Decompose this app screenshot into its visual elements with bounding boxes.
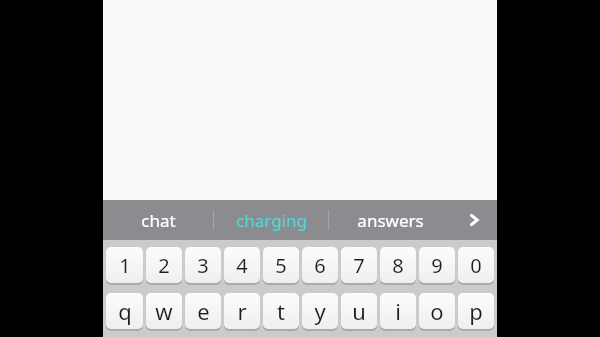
staticText: 5 bbox=[275, 252, 287, 279]
staticText: o bbox=[430, 296, 444, 326]
staticText: answers bbox=[357, 209, 424, 232]
staticText: 1 bbox=[119, 252, 131, 279]
button[interactable]: 2 bbox=[146, 247, 182, 283]
button[interactable]: 5 bbox=[263, 247, 299, 283]
staticText: e bbox=[197, 296, 210, 326]
staticText: w bbox=[155, 296, 173, 326]
button[interactable]: 4 bbox=[224, 247, 260, 283]
staticText: u bbox=[352, 296, 366, 326]
staticText: 8 bbox=[392, 252, 404, 279]
button[interactable]: r bbox=[224, 293, 260, 329]
staticText: charging bbox=[236, 209, 307, 232]
staticText: q bbox=[118, 296, 132, 326]
staticText: 3 bbox=[197, 252, 209, 279]
staticText: chat bbox=[141, 209, 176, 232]
button[interactable]: More suggestions bbox=[451, 200, 497, 240]
button[interactable]: answers bbox=[329, 200, 451, 240]
button[interactable]: 8 bbox=[380, 247, 416, 283]
button[interactable]: i bbox=[380, 293, 416, 329]
button[interactable]: t bbox=[263, 293, 299, 329]
button[interactable]: chat bbox=[103, 200, 213, 240]
staticText: 6 bbox=[314, 252, 326, 279]
staticText: y bbox=[314, 296, 326, 326]
button[interactable]: w bbox=[146, 293, 182, 329]
staticText: r bbox=[237, 296, 247, 326]
staticText: i bbox=[395, 296, 401, 326]
button[interactable]: q bbox=[106, 293, 143, 329]
button[interactable]: 3 bbox=[185, 247, 221, 283]
button[interactable]: e bbox=[185, 293, 221, 329]
staticText: p bbox=[469, 296, 483, 326]
staticText: 4 bbox=[236, 252, 248, 279]
button[interactable]: 1 bbox=[106, 247, 143, 283]
staticText: 7 bbox=[353, 252, 365, 279]
button[interactable]: u bbox=[341, 293, 377, 329]
button[interactable]: o bbox=[419, 293, 455, 329]
button[interactable]: y bbox=[302, 293, 338, 329]
staticText: 0 bbox=[470, 252, 482, 279]
button[interactable]: 0 bbox=[458, 247, 494, 283]
staticText: t bbox=[277, 296, 285, 326]
button[interactable]: charging bbox=[214, 200, 328, 240]
button[interactable]: 9 bbox=[419, 247, 455, 283]
button[interactable]: p bbox=[458, 293, 494, 329]
button[interactable]: 7 bbox=[341, 247, 377, 283]
button[interactable]: 6 bbox=[302, 247, 338, 283]
staticText: 9 bbox=[431, 252, 443, 279]
staticText: 2 bbox=[158, 252, 170, 279]
